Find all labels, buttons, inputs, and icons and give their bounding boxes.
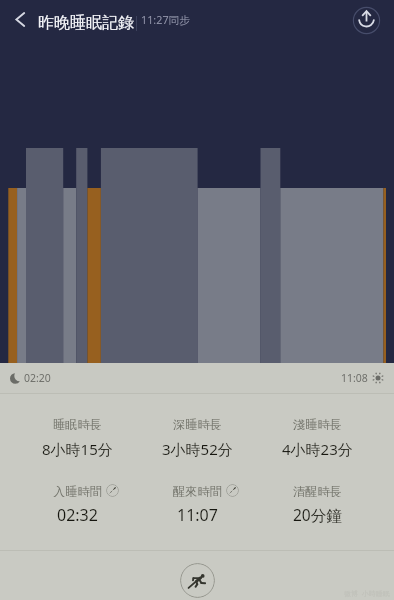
staticText: 3小時52分 [162,439,233,459]
staticText: 淺睡時長 [293,417,342,430]
staticText: 11:08 [341,371,368,385]
staticText: 清醒時長 [293,484,342,497]
staticText: 11:27同步 [141,12,191,27]
button[interactable]: Edit 入睡時間 [106,484,119,497]
staticText: 4小時23分 [282,439,353,459]
staticText: 20分鐘 [293,504,342,525]
button[interactable]: Back [5,5,35,35]
staticText: 深睡時長 [173,417,222,430]
staticText: 睡眠時長 [53,417,102,430]
staticText: 02:20 [24,371,51,385]
button[interactable]: Share [353,7,380,34]
button[interactable]: Edit 醒來時間 [226,484,239,497]
button[interactable]: Activity [180,563,215,598]
staticText: 02:32 [57,504,98,526]
staticText: 8小時15分 [42,439,113,459]
staticText: 11:07 [177,504,218,526]
staticText: 入睡時間 [53,484,102,497]
staticText: 醒來時間 [173,484,222,497]
staticText: 昨晚睡眠記錄 [38,13,134,33]
